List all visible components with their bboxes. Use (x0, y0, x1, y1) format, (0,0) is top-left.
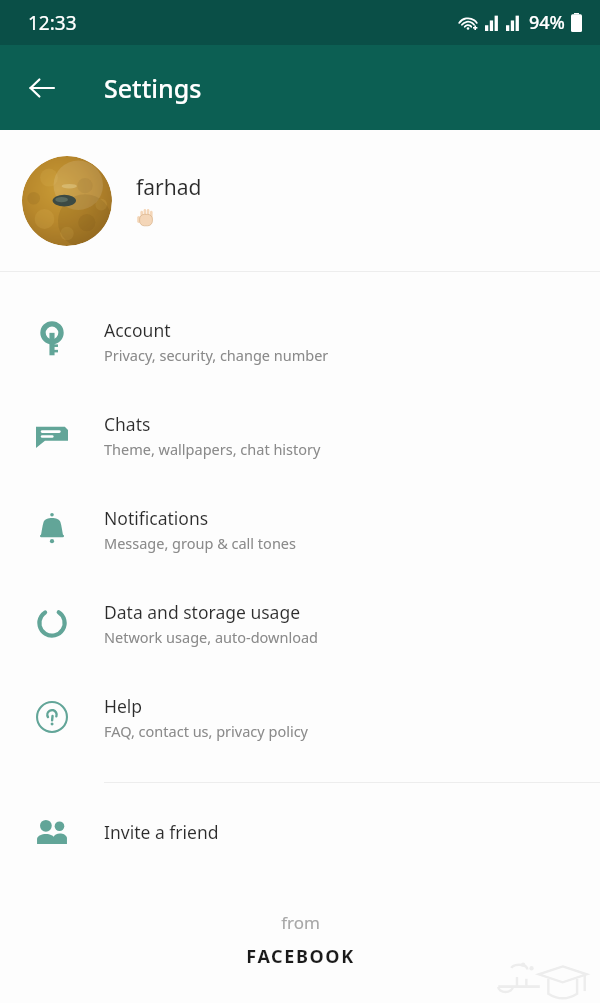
staticText: Chats (104, 412, 151, 436)
staticText: Message, group & call tones (104, 533, 296, 553)
staticText: farhad (136, 173, 202, 202)
button[interactable]: Help (0, 670, 600, 764)
staticText: FAQ, contact us, privacy policy (104, 721, 308, 741)
staticText: Account (104, 318, 171, 342)
button[interactable]: Chats (0, 388, 600, 482)
staticText: Theme, wallpapers, chat history (104, 439, 321, 459)
button[interactable]: Back (16, 62, 68, 114)
button[interactable]: Invite a friend (0, 801, 600, 863)
staticText: Network usage, auto-download (104, 627, 318, 647)
staticText: Notifications (104, 506, 209, 530)
staticText: Privacy, security, change number (104, 345, 329, 365)
staticText: FACEBOOK (246, 944, 355, 969)
staticText: from (281, 911, 320, 934)
staticText: Help (104, 694, 143, 718)
button[interactable]: Data and storage usage (0, 576, 600, 670)
button[interactable]: Account (0, 294, 600, 388)
button[interactable]: Notifications (0, 482, 600, 576)
staticText: 94% (529, 10, 565, 35)
staticText: 12:33 (28, 10, 77, 36)
staticText: Settings (104, 71, 202, 105)
staticText: Invite a friend (104, 820, 219, 844)
button[interactable]: farhad (0, 130, 600, 271)
staticText: Data and storage usage (104, 600, 301, 624)
